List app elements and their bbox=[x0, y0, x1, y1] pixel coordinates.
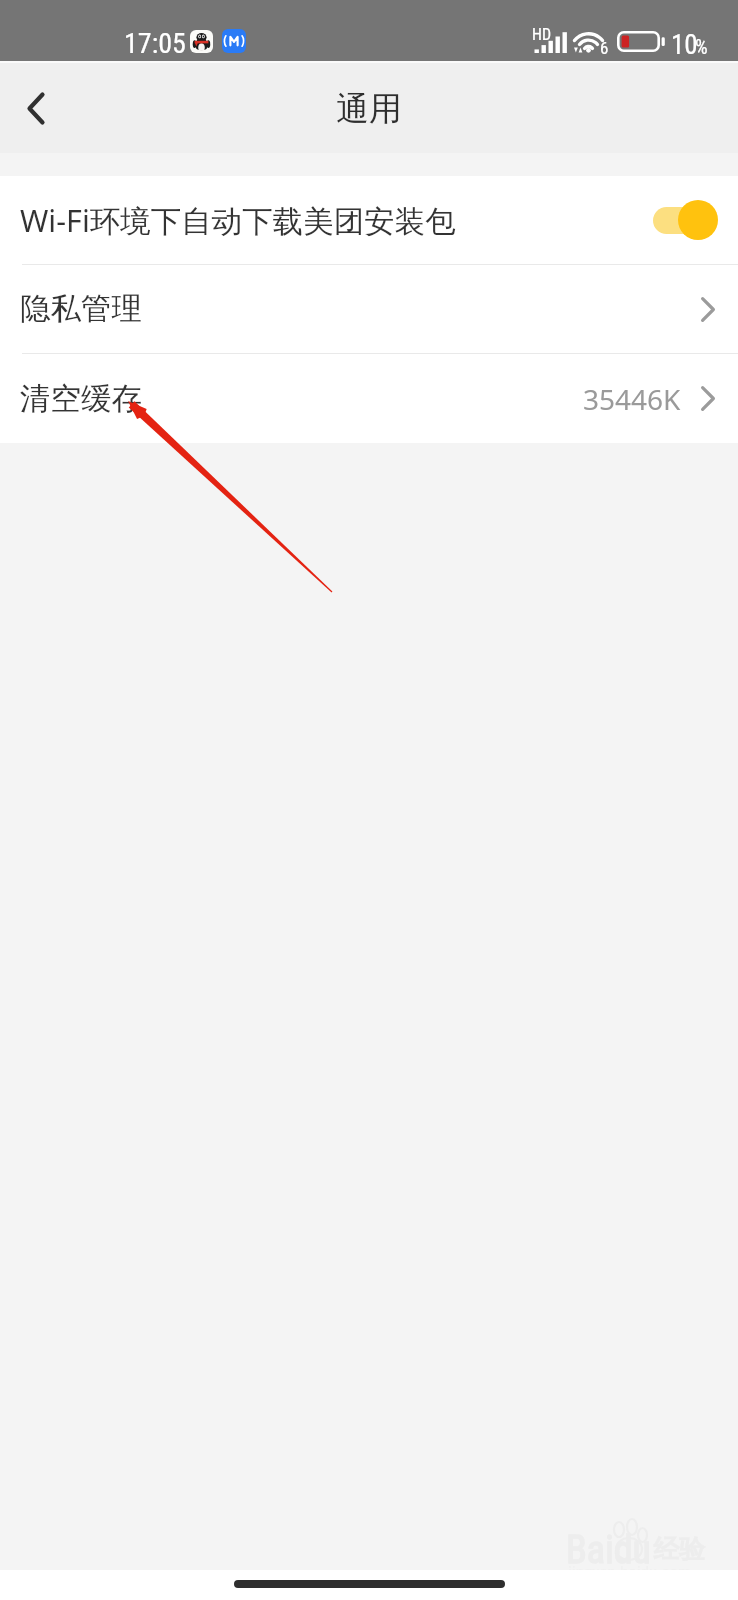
staticText: 10 bbox=[671, 29, 698, 61]
button[interactable]: 隐私管理 bbox=[0, 265, 738, 353]
staticText: 17:05 bbox=[124, 27, 186, 60]
staticText: 35446K bbox=[583, 380, 681, 418]
staticText: % bbox=[695, 35, 708, 58]
staticText: Wi-Fi环境下自动下载美团安装包 bbox=[20, 199, 456, 241]
staticText: jingyan.baidu.com bbox=[568, 1562, 691, 1582]
staticText: 6 bbox=[600, 38, 609, 58]
staticText: 经验 bbox=[653, 1533, 705, 1566]
button[interactable]: Auto download installer over Wi-Fi bbox=[652, 200, 718, 240]
staticText: 通用 bbox=[336, 88, 402, 130]
button[interactable]: Back bbox=[0, 63, 72, 153]
staticText: 隐私管理 bbox=[20, 290, 142, 328]
staticText: Baidu bbox=[566, 1528, 651, 1573]
staticText: HD bbox=[532, 25, 552, 44]
button[interactable]: 清空缓存 bbox=[0, 354, 738, 443]
button[interactable]: Wi-Fi环境下自动下载美团安装包 bbox=[0, 176, 738, 264]
staticText: 清空缓存 bbox=[20, 380, 142, 418]
